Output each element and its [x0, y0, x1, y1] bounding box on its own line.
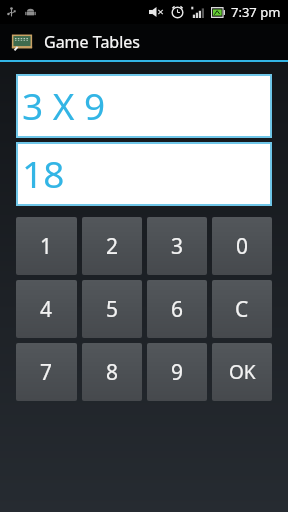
- button[interactable]: 9: [147, 343, 207, 401]
- staticText: 8: [106, 358, 119, 387]
- staticText: 0: [236, 232, 249, 261]
- staticText: Game Tables: [44, 31, 141, 53]
- staticText: C: [235, 295, 249, 324]
- staticText: 6: [171, 295, 184, 324]
- staticText: 3: [171, 232, 184, 261]
- staticText: 18: [22, 148, 65, 198]
- staticText: 3 X 9: [22, 80, 106, 130]
- button[interactable]: 2: [82, 217, 142, 275]
- button[interactable]: 6: [147, 280, 207, 338]
- staticText: 7: [40, 358, 53, 387]
- button[interactable]: 3 X 9: [16, 74, 272, 138]
- button[interactable]: 4: [16, 280, 77, 338]
- staticText: 9: [171, 358, 184, 387]
- button[interactable]: 18: [16, 142, 272, 206]
- staticText: OK: [229, 359, 256, 385]
- staticText: 2: [106, 232, 119, 261]
- button[interactable]: OK: [212, 343, 272, 401]
- staticText: 4: [40, 295, 53, 324]
- button[interactable]: C: [212, 280, 272, 338]
- staticText: 5: [106, 295, 119, 324]
- button[interactable]: 8: [82, 343, 142, 401]
- button[interactable]: 7: [16, 343, 77, 401]
- button[interactable]: 0: [212, 217, 272, 275]
- staticText: 1: [40, 232, 53, 261]
- button[interactable]: 1: [16, 217, 77, 275]
- button[interactable]: 3: [147, 217, 207, 275]
- button[interactable]: 5: [82, 280, 142, 338]
- staticText: 7:37 pm: [231, 3, 281, 21]
